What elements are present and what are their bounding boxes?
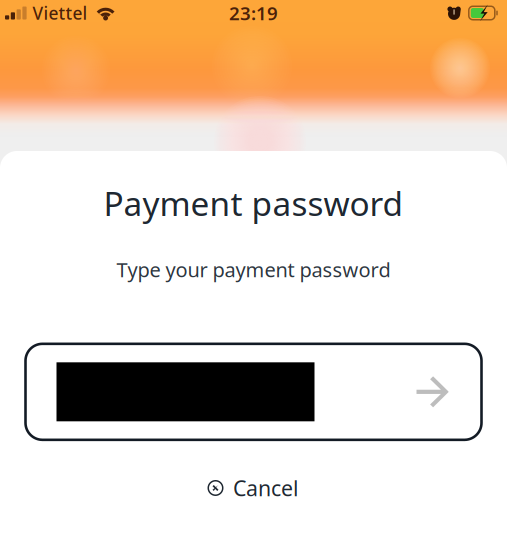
staticText: Type your payment password [116, 256, 390, 283]
staticText: Payment password [103, 181, 403, 225]
button[interactable]: Submit password [399, 346, 481, 438]
staticText: Viettel [33, 1, 88, 24]
button[interactable]: Cancel [192, 440, 315, 516]
staticText: 23:19 [229, 1, 278, 25]
staticText: Cancel [233, 474, 299, 502]
